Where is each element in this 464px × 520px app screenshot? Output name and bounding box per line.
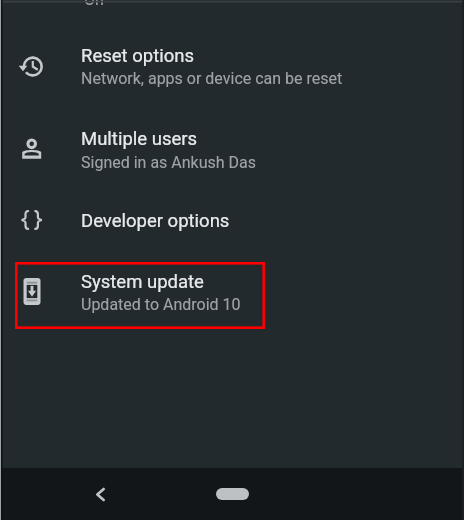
staticText: On [84, 0, 104, 9]
staticText: Reset options [81, 45, 195, 67]
staticText: Network, apps or device can be reset [81, 69, 343, 88]
staticText: Signed in as Ankush Das [81, 153, 257, 172]
button[interactable] [0, 38, 464, 94]
button[interactable] [0, 200, 464, 242]
staticText: Multiple users [81, 128, 198, 150]
staticText: Developer options [81, 210, 230, 232]
button[interactable]: Home [216, 488, 249, 500]
button[interactable] [15, 262, 265, 329]
button[interactable] [0, 120, 464, 176]
staticText: System update [81, 271, 204, 293]
staticText: Updated to Android 10 [81, 295, 241, 314]
button[interactable]: Back [88, 480, 116, 508]
